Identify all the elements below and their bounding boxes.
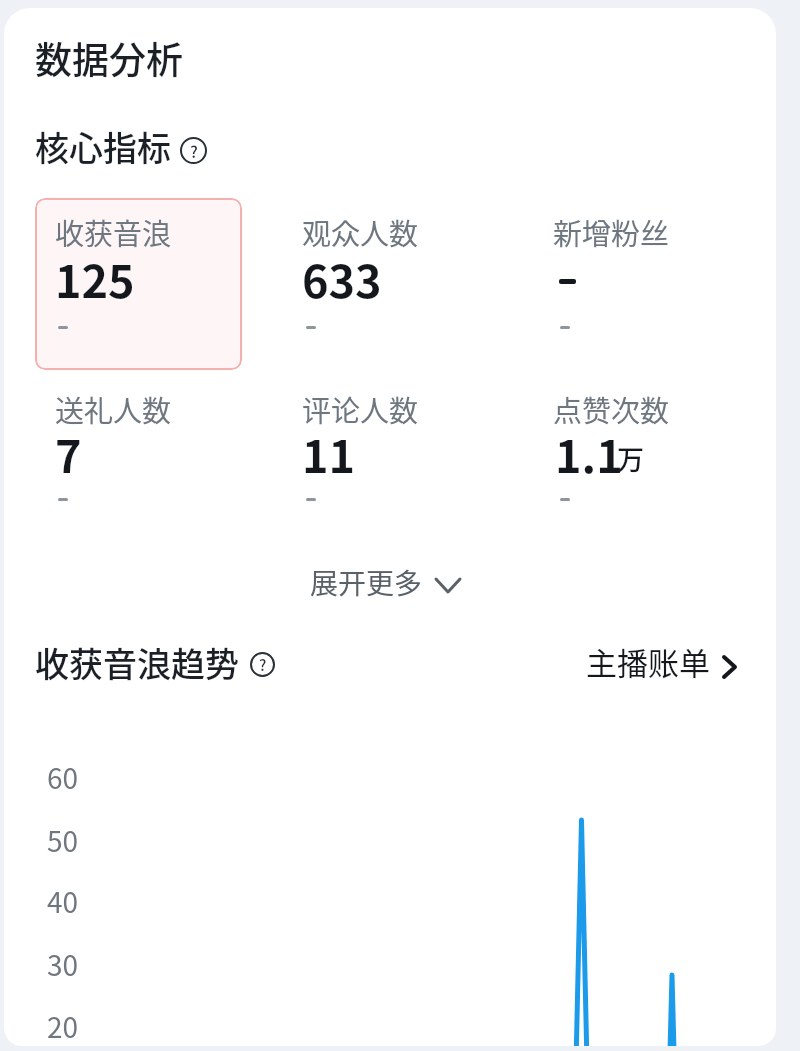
button[interactable]: [299, 198, 509, 370]
staticText: 30: [47, 944, 79, 984]
staticText: ?: [190, 139, 198, 162]
staticText: 20: [47, 1006, 79, 1046]
staticText: 50: [47, 820, 79, 860]
staticText: 观众人数: [302, 211, 419, 253]
staticText: 1.1: [555, 421, 623, 486]
button[interactable]: 主播账单: [578, 644, 748, 690]
staticText: 新增粉丝: [553, 211, 670, 253]
staticText: ?: [259, 654, 267, 676]
staticText: 60: [47, 757, 79, 797]
staticText: 送礼人数: [55, 388, 172, 430]
button[interactable]: ?: [180, 137, 207, 164]
button[interactable]: [35, 198, 242, 370]
staticText: 评论人数: [302, 388, 419, 430]
button[interactable]: [299, 374, 509, 534]
staticText: 主播账单: [586, 639, 710, 684]
staticText: 万: [617, 439, 644, 478]
staticText: 数据分析: [35, 31, 183, 85]
staticText: 40: [47, 881, 79, 921]
staticText: 11: [302, 421, 356, 486]
button[interactable]: [553, 198, 763, 370]
button[interactable]: [553, 374, 763, 534]
staticText: 核心指标: [35, 122, 171, 171]
staticText: 125: [55, 246, 135, 311]
button[interactable]: [35, 374, 245, 534]
staticText: 7: [55, 421, 82, 486]
staticText: 收获音浪趋势: [35, 638, 239, 687]
staticText: 633: [302, 246, 382, 311]
staticText: 展开更多: [310, 562, 423, 603]
button[interactable]: ?: [250, 652, 275, 677]
button[interactable]: 展开更多: [302, 562, 478, 606]
staticText: 收获音浪: [55, 211, 172, 253]
staticText: 点赞次数: [553, 388, 670, 430]
